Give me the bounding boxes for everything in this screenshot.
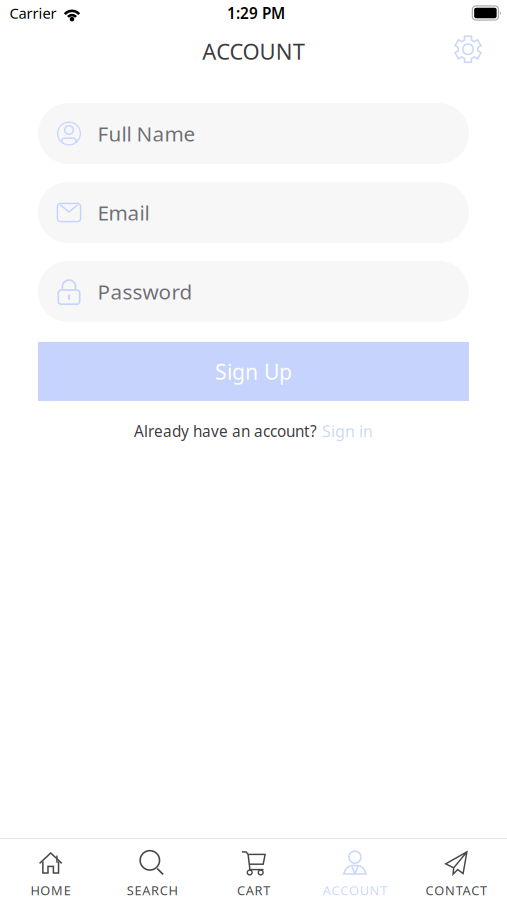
button[interactable]: Password bbox=[38, 261, 469, 322]
staticText: Password bbox=[97, 277, 192, 305]
button[interactable]: Sign Up bbox=[38, 342, 469, 401]
button[interactable]: SEARCH bbox=[101, 839, 203, 900]
button[interactable]: Already have an account? bbox=[38, 418, 469, 444]
staticText: 1:29 PM bbox=[227, 3, 285, 23]
button[interactable]: ACCOUNT bbox=[304, 839, 406, 900]
staticText: CONTACT bbox=[426, 882, 487, 899]
button[interactable]: Full Name bbox=[38, 103, 469, 164]
staticText: Email bbox=[97, 198, 149, 226]
button[interactable]: HOME bbox=[0, 839, 101, 900]
staticText: SEARCH bbox=[127, 882, 177, 899]
button[interactable]: CART bbox=[203, 839, 304, 900]
staticText: ACCOUNT bbox=[202, 36, 305, 66]
staticText: CART bbox=[237, 882, 270, 899]
staticText: Already have an account? bbox=[134, 421, 317, 441]
staticText: Sign Up bbox=[215, 357, 292, 386]
staticText: HOME bbox=[31, 882, 71, 899]
button[interactable]: Settings bbox=[446, 27, 490, 75]
staticText: Full Name bbox=[97, 119, 195, 147]
staticText: ACCOUNT bbox=[323, 882, 387, 899]
staticText: Sign in bbox=[322, 420, 373, 442]
button[interactable]: Email bbox=[38, 182, 469, 243]
staticText: Carrier bbox=[9, 3, 56, 23]
button[interactable]: CONTACT bbox=[406, 839, 507, 900]
